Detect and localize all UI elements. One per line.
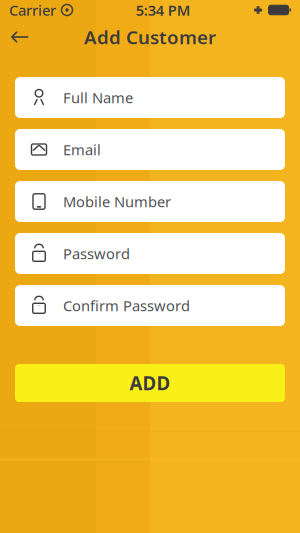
staticText: Confirm Password [63, 296, 190, 315]
staticText: 5:34 PM [136, 0, 191, 20]
button[interactable]: Mobile Number [15, 181, 285, 222]
button[interactable]: Email [15, 129, 285, 170]
staticText: Add Customer [84, 25, 216, 49]
button[interactable]: Password [15, 233, 285, 274]
staticText: Email [63, 140, 101, 159]
staticText: Password [63, 244, 130, 263]
staticText: Full Name [63, 88, 133, 107]
button[interactable]: Confirm Password [15, 285, 285, 326]
staticText: ADD [129, 371, 170, 395]
button[interactable]: ADD [15, 364, 285, 402]
button[interactable]: Full Name [15, 77, 285, 118]
staticText: Carrier [9, 0, 56, 20]
staticText: Mobile Number [63, 192, 171, 211]
button[interactable]: Back [0, 20, 40, 54]
